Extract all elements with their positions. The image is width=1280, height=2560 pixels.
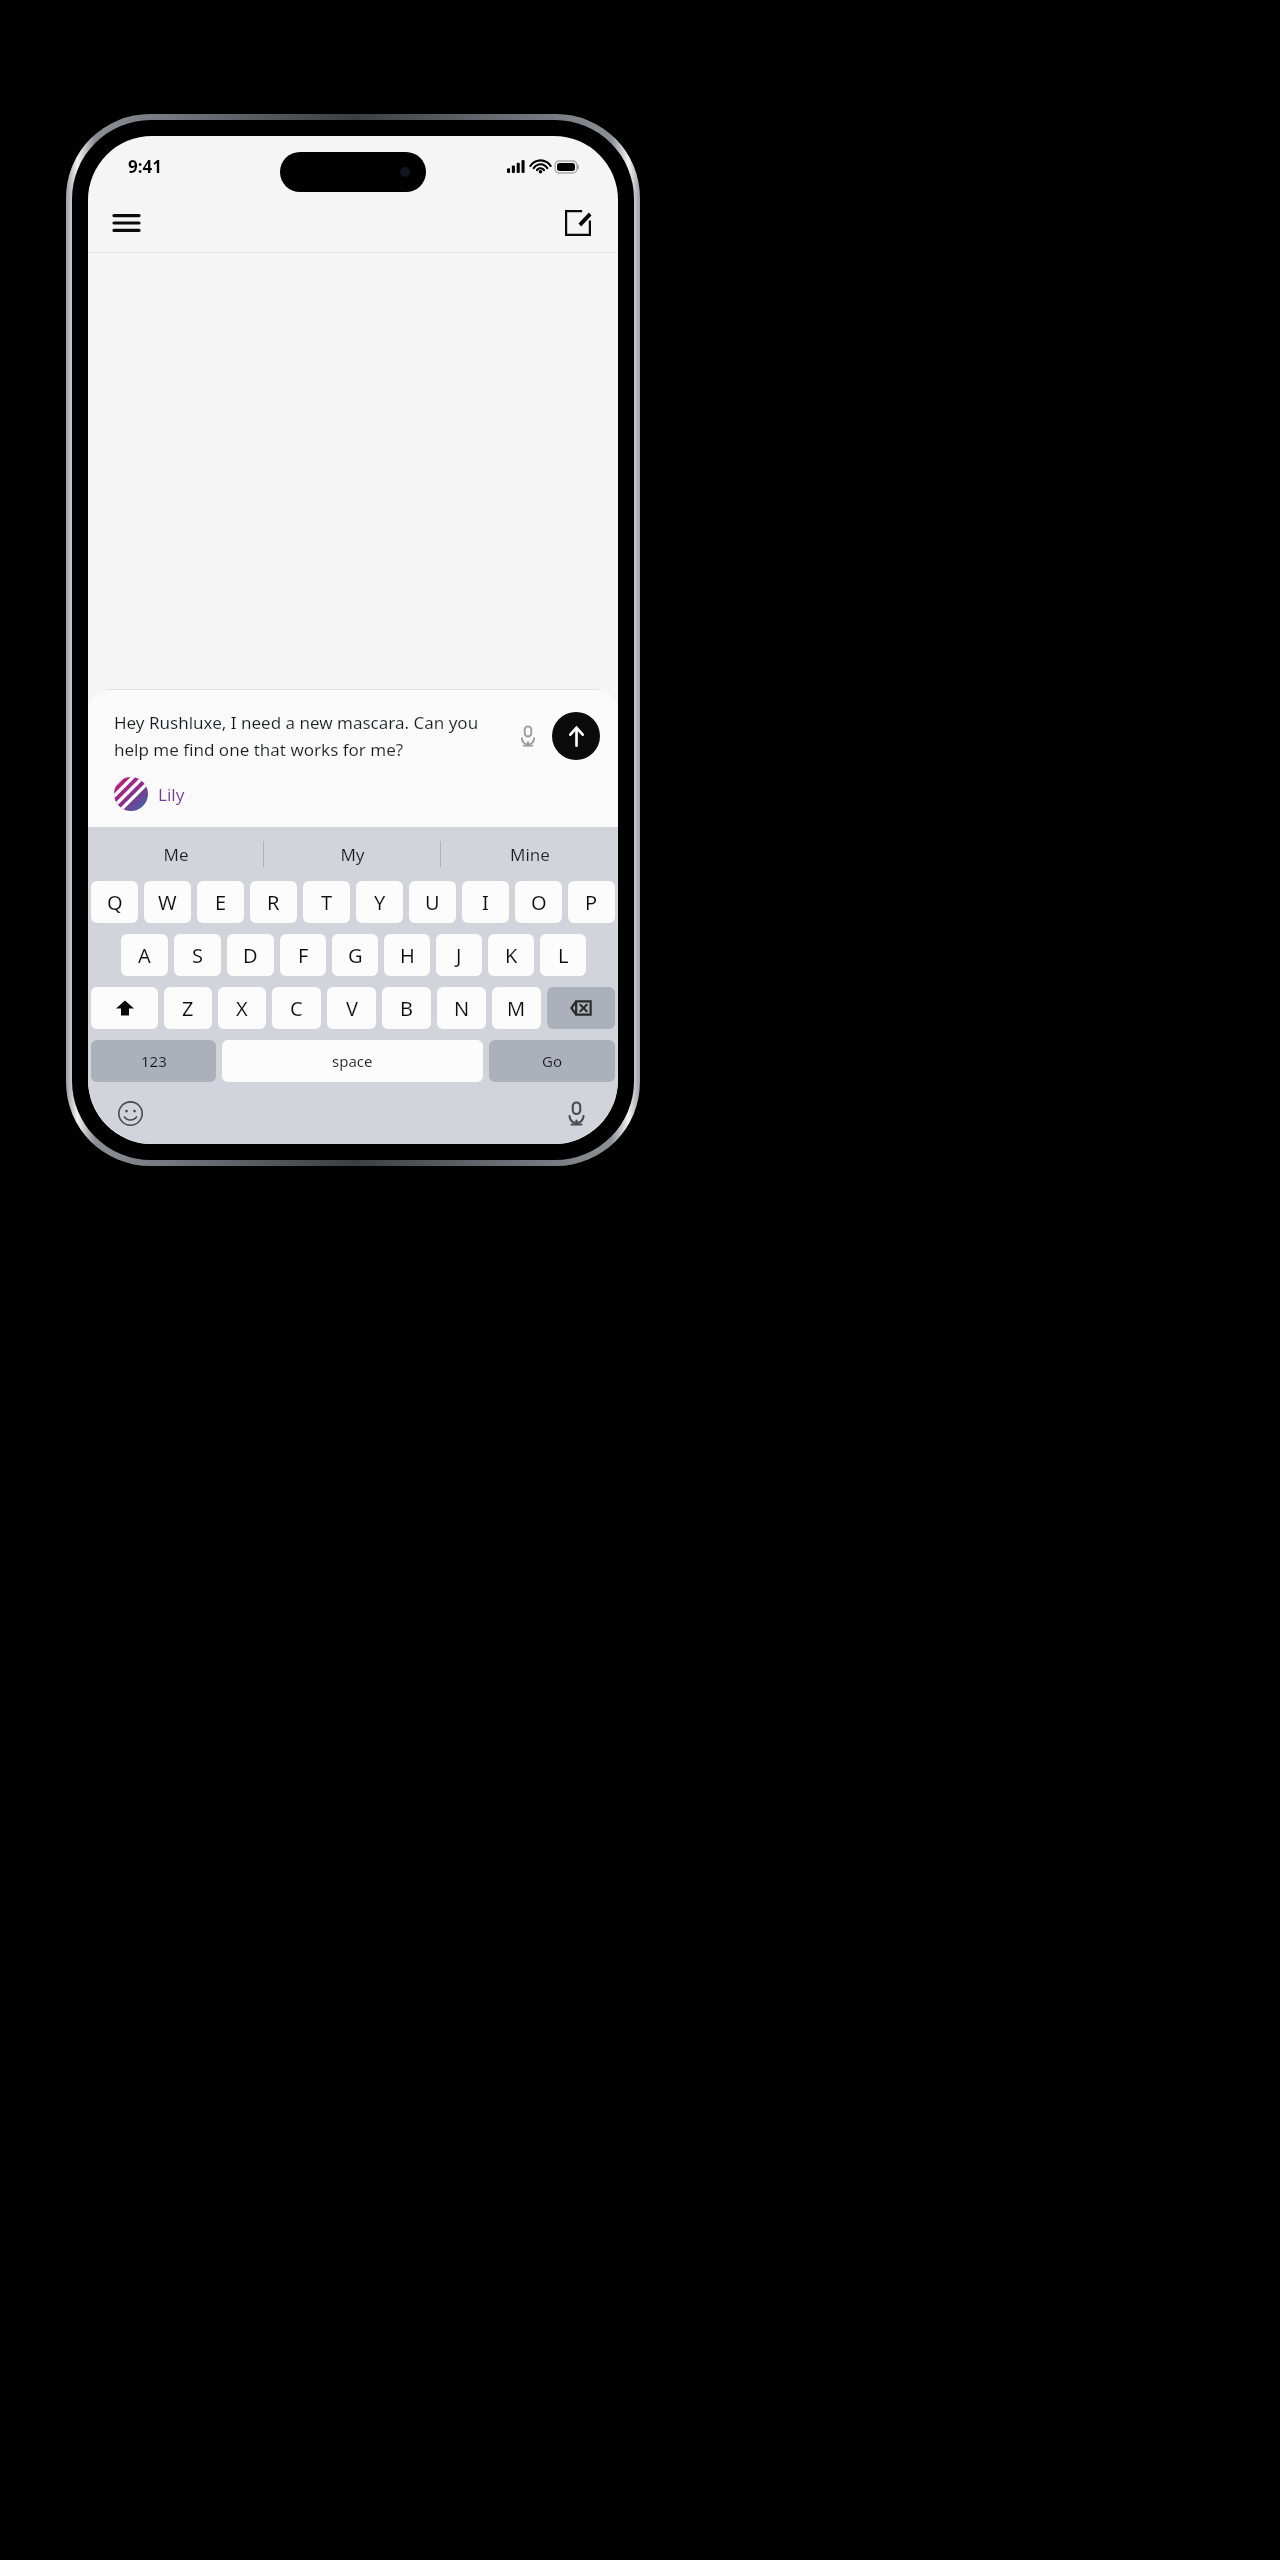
staticText: I xyxy=(482,889,489,916)
button[interactable]: V xyxy=(327,987,376,1029)
button[interactable]: Lily xyxy=(114,777,185,811)
staticText: J xyxy=(456,942,462,969)
button[interactable]: Y xyxy=(356,881,403,923)
staticText: O xyxy=(531,889,547,916)
staticText: C xyxy=(290,995,303,1022)
staticText: E xyxy=(215,889,227,916)
button[interactable]: Go xyxy=(489,1040,615,1082)
staticText: D xyxy=(243,942,258,969)
button[interactable]: Compose new message xyxy=(554,199,602,247)
button[interactable]: space xyxy=(222,1040,483,1082)
staticText: Me xyxy=(163,843,189,866)
button[interactable]: I xyxy=(462,881,509,923)
button[interactable]: N xyxy=(437,987,486,1029)
button[interactable]: B xyxy=(382,987,431,1029)
staticText: My xyxy=(340,843,365,866)
button[interactable]: 123 xyxy=(91,1040,216,1082)
staticText: T xyxy=(321,889,333,916)
button[interactable]: My xyxy=(264,827,441,881)
button[interactable]: X xyxy=(218,987,266,1029)
staticText: G xyxy=(348,942,363,969)
staticText: M xyxy=(507,995,526,1022)
staticText: Q xyxy=(107,889,123,916)
button[interactable]: W xyxy=(144,881,191,923)
staticText: W xyxy=(158,889,177,916)
button[interactable]: G xyxy=(332,934,378,976)
staticText: Go xyxy=(542,1051,562,1071)
button[interactable]: Me xyxy=(88,827,264,881)
staticText: 123 xyxy=(141,1051,167,1071)
button[interactable]: K xyxy=(488,934,534,976)
button[interactable]: Z xyxy=(164,987,212,1029)
button[interactable]: S xyxy=(174,934,221,976)
staticText: P xyxy=(585,889,598,916)
staticText: H xyxy=(400,942,415,969)
staticText: U xyxy=(425,889,440,916)
staticText: F xyxy=(298,942,309,969)
button[interactable]: H xyxy=(384,934,430,976)
button[interactable]: Mine xyxy=(441,827,618,881)
button[interactable]: Emoji xyxy=(110,1093,150,1133)
button[interactable]: Voice input xyxy=(508,716,548,756)
staticText: N xyxy=(454,995,470,1022)
button[interactable]: C xyxy=(272,987,321,1029)
staticText: L xyxy=(558,942,569,969)
staticText: Lily xyxy=(158,783,185,806)
staticText: K xyxy=(505,942,518,969)
staticText: B xyxy=(400,995,413,1022)
button[interactable]: Send xyxy=(552,712,600,760)
button[interactable]: L xyxy=(540,934,586,976)
staticText: V xyxy=(346,995,358,1022)
staticText: S xyxy=(192,942,203,969)
staticText: space xyxy=(332,1051,373,1071)
button[interactable]: U xyxy=(409,881,456,923)
staticText: Y xyxy=(374,889,386,916)
button[interactable]: O xyxy=(515,881,562,923)
button[interactable]: Backspace xyxy=(547,987,615,1029)
button[interactable]: R xyxy=(250,881,297,923)
button[interactable]: A xyxy=(121,934,168,976)
button[interactable]: M xyxy=(492,987,541,1029)
button[interactable]: J xyxy=(436,934,482,976)
button[interactable]: Shift xyxy=(91,987,158,1029)
staticText: 9:41 xyxy=(128,155,162,178)
button[interactable]: E xyxy=(197,881,244,923)
staticText: Z xyxy=(182,995,194,1022)
button[interactable]: Menu xyxy=(102,199,150,247)
button[interactable]: P xyxy=(568,881,615,923)
staticText: X xyxy=(236,995,248,1022)
staticText: Hey Rushluxe, I need a new mascara. Can … xyxy=(114,711,498,761)
staticText: Mine xyxy=(510,843,550,866)
button[interactable]: Dictate xyxy=(556,1093,596,1133)
staticText: A xyxy=(138,942,151,969)
staticText: R xyxy=(267,889,280,916)
button[interactable]: D xyxy=(227,934,274,976)
button[interactable]: F xyxy=(280,934,326,976)
button[interactable]: T xyxy=(303,881,350,923)
button[interactable]: Q xyxy=(91,881,138,923)
